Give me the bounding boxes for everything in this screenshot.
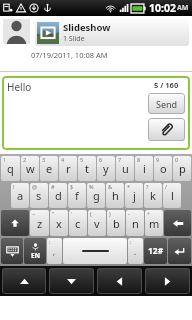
button[interactable]: ~ — [30, 210, 49, 236]
staticText: - — [128, 210, 130, 217]
staticText: b — [113, 216, 120, 231]
staticText: e — [46, 161, 53, 176]
staticText: 5 / 160 — [154, 80, 179, 90]
staticText: 10:02 — [149, 1, 176, 15]
staticText: . — [134, 246, 137, 257]
staticText: y — [103, 161, 109, 176]
staticText: k — [150, 188, 156, 203]
staticText: j — [133, 188, 136, 203]
button[interactable]: 1 — [1, 156, 20, 181]
staticText: p — [179, 161, 186, 176]
staticText: v — [94, 216, 100, 231]
staticText: " — [52, 210, 55, 217]
staticText: r — [66, 161, 71, 176]
staticText: $ — [70, 183, 74, 190]
button[interactable]: 5 — [78, 156, 96, 181]
staticText: i — [143, 161, 146, 176]
staticText: 2 — [23, 156, 27, 163]
staticText: ) — [109, 210, 111, 217]
staticText: 7 — [118, 156, 122, 163]
button[interactable]: Slideshow — [35, 19, 189, 46]
button[interactable]: 4 — [59, 156, 77, 181]
button[interactable]: + — [145, 210, 163, 236]
button[interactable]: / — [163, 183, 181, 208]
button[interactable]: ? — [144, 183, 162, 208]
staticText: a — [17, 188, 24, 203]
staticText: q — [7, 161, 14, 176]
staticText: # — [51, 183, 55, 190]
staticText: d — [55, 188, 62, 203]
staticText: Send — [156, 98, 178, 110]
button[interactable]: ) — [107, 210, 125, 236]
button[interactable]: ( — [88, 210, 106, 236]
button[interactable]: Shift — [1, 210, 29, 236]
button[interactable]: Attach — [148, 118, 185, 141]
button[interactable]: ! — [11, 183, 29, 208]
staticText: w — [26, 161, 35, 176]
button[interactable]: 7 — [116, 156, 134, 181]
button[interactable]: 8 — [135, 156, 153, 181]
button[interactable]: Voice input English — [24, 238, 46, 264]
staticText: o — [160, 161, 167, 176]
staticText: 5 — [80, 156, 84, 163]
button[interactable]: 6 — [97, 156, 115, 181]
button[interactable]: Left — [97, 268, 142, 294]
button[interactable]: Symbols — [144, 238, 167, 264]
staticText: 3 — [42, 156, 46, 163]
button[interactable]: Enter — [168, 238, 191, 264]
staticText: ! — [13, 183, 15, 190]
staticText: Slideshow — [63, 21, 111, 34]
staticText: 9 — [156, 156, 160, 163]
staticText: ~ — [32, 210, 36, 217]
staticText: s — [36, 188, 42, 203]
staticText: h — [112, 188, 119, 203]
button[interactable]: " — [50, 210, 68, 236]
button[interactable]: : — [128, 238, 143, 264]
staticText: f — [75, 188, 79, 203]
button[interactable]: & — [106, 183, 124, 208]
button[interactable]: Send — [148, 93, 185, 114]
staticText: ' — [71, 210, 73, 217]
staticText: & — [108, 183, 113, 190]
staticText: 1 — [3, 156, 7, 163]
staticText: c — [75, 216, 81, 231]
button[interactable]: Right — [145, 268, 190, 294]
staticText: x — [56, 216, 62, 231]
button[interactable]: @ — [30, 183, 48, 208]
staticText: 0 — [175, 156, 179, 163]
button[interactable]: 2 — [21, 156, 39, 181]
button[interactable]: : — [47, 238, 62, 264]
staticText: : — [130, 238, 132, 245]
staticText: 8 — [137, 156, 141, 163]
button[interactable]: 3 — [40, 156, 58, 181]
button[interactable]: % — [87, 183, 105, 208]
staticText: + — [147, 210, 151, 217]
staticText: 07/19/2011, 10:08 AM — [31, 50, 108, 60]
staticText: t — [85, 161, 89, 176]
button[interactable]: ' — [69, 210, 87, 236]
button[interactable]: Hide keyboard — [1, 238, 23, 264]
button[interactable]: Backspace — [164, 210, 191, 236]
button[interactable]: $ — [68, 183, 86, 208]
staticText: 12# — [148, 245, 164, 257]
button[interactable]: Down — [49, 268, 94, 294]
staticText: m — [149, 216, 160, 231]
button[interactable]: 9 — [154, 156, 172, 181]
button[interactable]: Space — [63, 238, 127, 264]
staticText: z — [37, 216, 43, 231]
staticText: % — [89, 183, 94, 190]
staticText: : — [49, 238, 51, 245]
button[interactable]: * — [125, 183, 143, 208]
staticText: EN — [31, 251, 40, 260]
button[interactable]: Hello — [2, 76, 190, 150]
staticText: 1 Slide — [63, 34, 85, 44]
button[interactable]: # — [49, 183, 67, 208]
button[interactable]: - — [126, 210, 144, 236]
staticText: @ — [32, 183, 37, 190]
staticText: AM — [177, 3, 189, 13]
button[interactable]: Up — [2, 268, 46, 294]
staticText: * — [127, 183, 131, 190]
staticText: 4 — [61, 156, 65, 163]
button[interactable]: 0 — [173, 156, 191, 181]
staticText: , — [53, 246, 56, 257]
